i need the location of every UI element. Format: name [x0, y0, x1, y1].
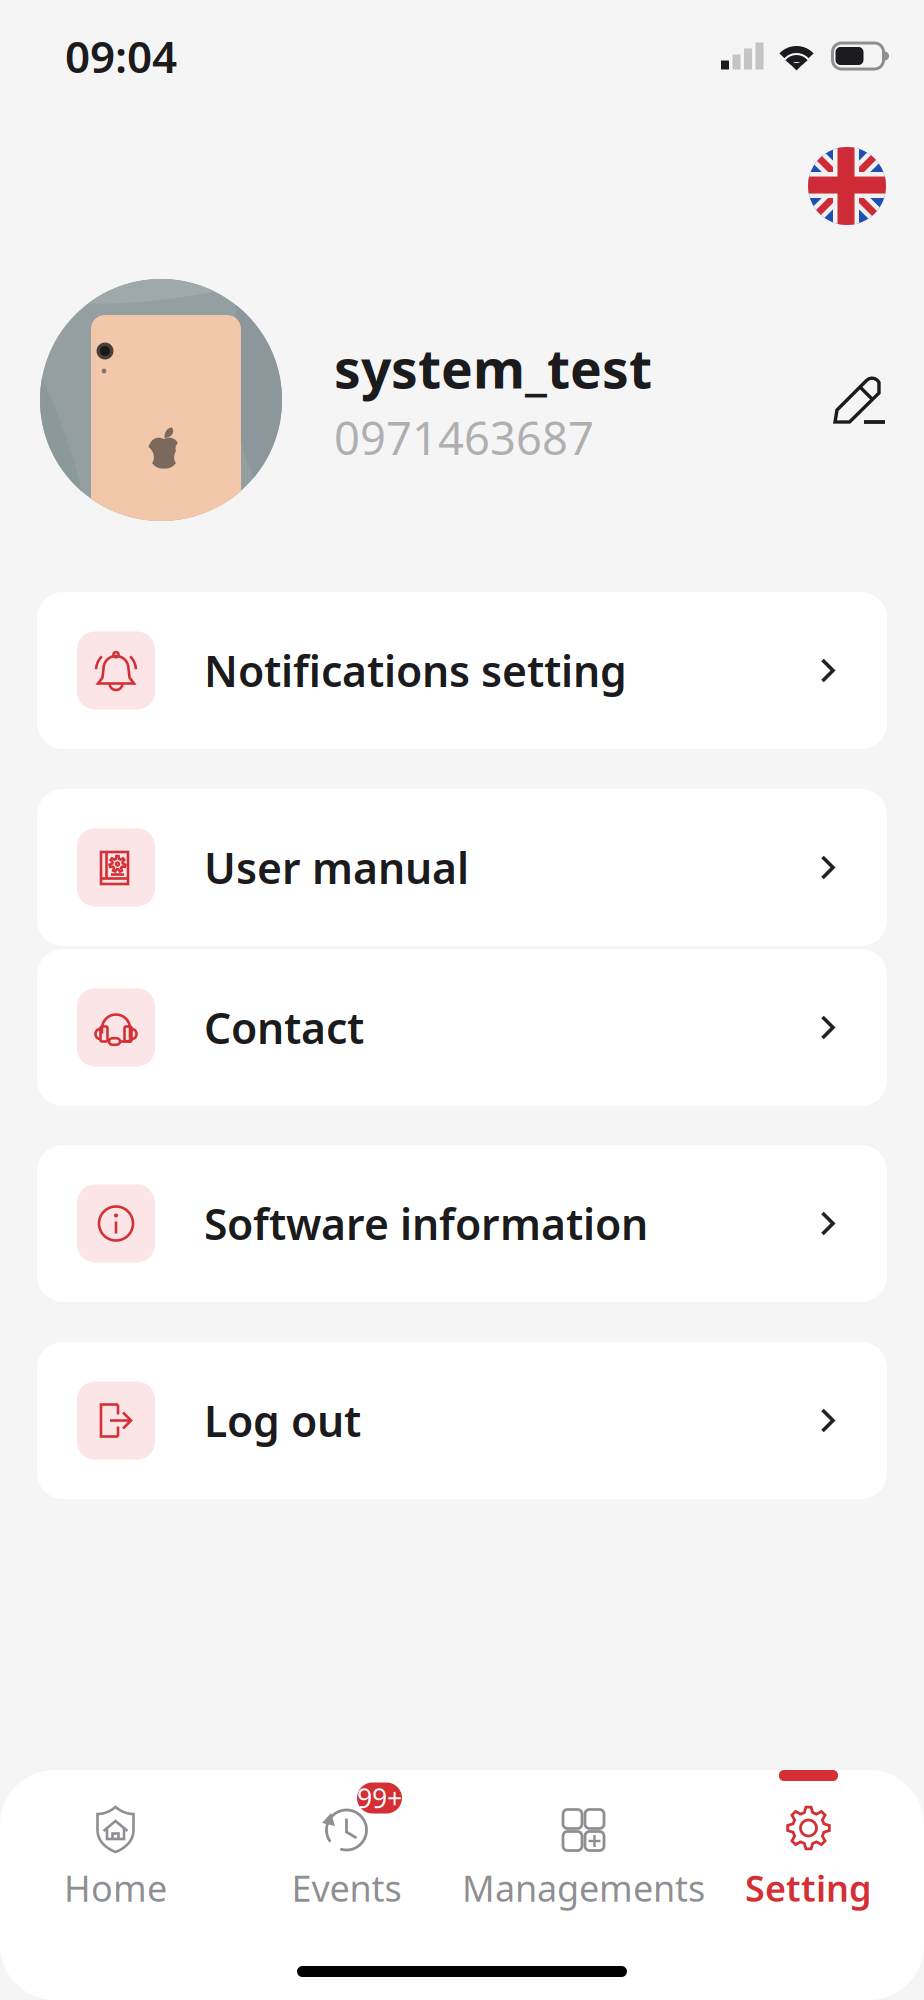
- staticText: Home: [64, 1864, 167, 1912]
- staticText: Notifications setting: [204, 642, 627, 699]
- staticText: Setting: [745, 1864, 872, 1912]
- staticText: Software information: [204, 1195, 648, 1252]
- staticText: system_test: [334, 332, 652, 403]
- staticText: 99+: [357, 1780, 402, 1816]
- button[interactable]: 99+: [231, 1804, 462, 1912]
- button[interactable]: Edit profile: [833, 371, 891, 429]
- staticText: User manual: [204, 839, 469, 896]
- button[interactable]: Managements: [462, 1804, 693, 1912]
- staticText: 09:04: [65, 27, 177, 85]
- button[interactable]: User manual: [37, 789, 887, 946]
- staticText: Log out: [204, 1392, 361, 1449]
- button[interactable]: Software information: [37, 1145, 887, 1302]
- staticText: Events: [291, 1864, 401, 1912]
- button[interactable]: Contact: [37, 949, 887, 1106]
- staticText: Managements: [462, 1864, 705, 1912]
- button[interactable]: Language: [808, 147, 886, 225]
- button[interactable]: Setting: [693, 1804, 924, 1912]
- button[interactable]: Home: [0, 1804, 231, 1912]
- button[interactable]: Log out: [37, 1342, 887, 1499]
- button[interactable]: Notifications setting: [37, 592, 887, 749]
- staticText: 0971463687: [334, 407, 594, 467]
- staticText: Contact: [204, 999, 364, 1056]
